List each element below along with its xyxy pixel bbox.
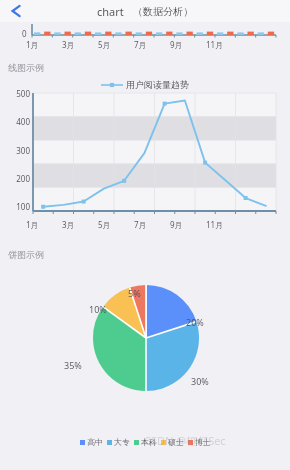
button[interactable]: 硕士 <box>161 437 184 447</box>
staticText: 3月 <box>62 39 98 50</box>
staticText: 0 <box>22 28 27 39</box>
staticText: 大专 <box>114 437 130 447</box>
button[interactable]: Back <box>4 0 26 22</box>
staticText: 7月 <box>134 219 170 230</box>
staticText: chart <box>97 4 124 19</box>
staticText: 9月 <box>170 219 206 230</box>
staticText: 500 <box>6 88 30 99</box>
staticText: 用户阅读量趋势 <box>126 79 189 90</box>
staticText: 35% <box>64 359 82 371</box>
staticText: 30% <box>191 375 209 387</box>
staticText: 饼图示例 <box>8 249 44 260</box>
button[interactable]: 大专 <box>107 437 130 447</box>
staticText: 本科 <box>141 437 157 447</box>
staticText: 硕士 <box>168 437 184 447</box>
staticText: 400 <box>6 116 30 127</box>
staticText: 5月 <box>98 219 134 230</box>
staticText: CSDN @框仔Sec <box>144 433 226 448</box>
staticText: 5月 <box>98 39 134 50</box>
staticText: 10% <box>89 303 107 315</box>
staticText: 11月 <box>206 39 232 50</box>
staticText: 300 <box>6 145 30 156</box>
staticText: 线图示例 <box>8 62 44 73</box>
staticText: 博士 <box>195 437 211 447</box>
staticText: 5% <box>128 287 141 299</box>
button[interactable]: 用户阅读量趋势 <box>101 79 189 90</box>
button[interactable]: 本科 <box>134 437 157 447</box>
staticText: 1月 <box>26 219 62 230</box>
staticText: （数据分析） <box>133 5 193 18</box>
staticText: 3月 <box>62 219 98 230</box>
staticText: 9月 <box>170 39 206 50</box>
button[interactable]: 博士 <box>188 437 211 447</box>
staticText: 200 <box>6 173 30 184</box>
staticText: 100 <box>6 201 30 212</box>
staticText: 20% <box>186 316 204 328</box>
staticText: 高中 <box>87 437 103 447</box>
staticText: 1月 <box>26 39 62 50</box>
button[interactable]: 高中 <box>80 437 103 447</box>
staticText: 7月 <box>134 39 170 50</box>
staticText: 11月 <box>206 219 232 230</box>
